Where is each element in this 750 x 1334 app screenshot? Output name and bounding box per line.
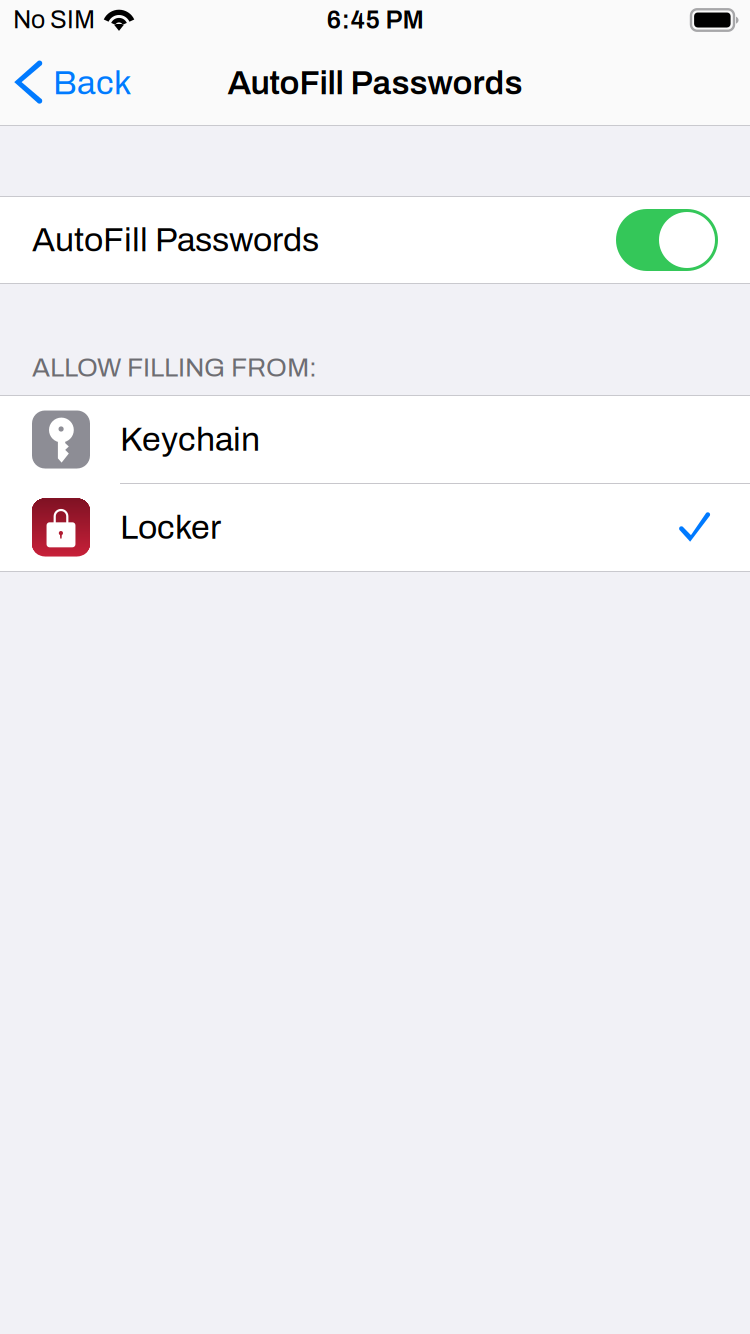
- button[interactable]: Keychain: [0, 396, 750, 483]
- staticText: Back: [53, 64, 131, 101]
- staticText: No SIM: [13, 6, 95, 33]
- staticText: AutoFill Passwords: [227, 65, 522, 101]
- staticText: Locker: [120, 509, 221, 546]
- button[interactable]: AutoFill Passwords: [0, 197, 750, 283]
- staticText: Keychain: [120, 421, 260, 458]
- staticText: ALLOW FILLING FROM:: [32, 353, 317, 382]
- staticText: AutoFill Passwords: [32, 222, 319, 258]
- staticText: 6:45 PM: [326, 6, 423, 34]
- button[interactable]: Back: [0, 40, 145, 126]
- button[interactable]: Locker: [0, 484, 750, 571]
